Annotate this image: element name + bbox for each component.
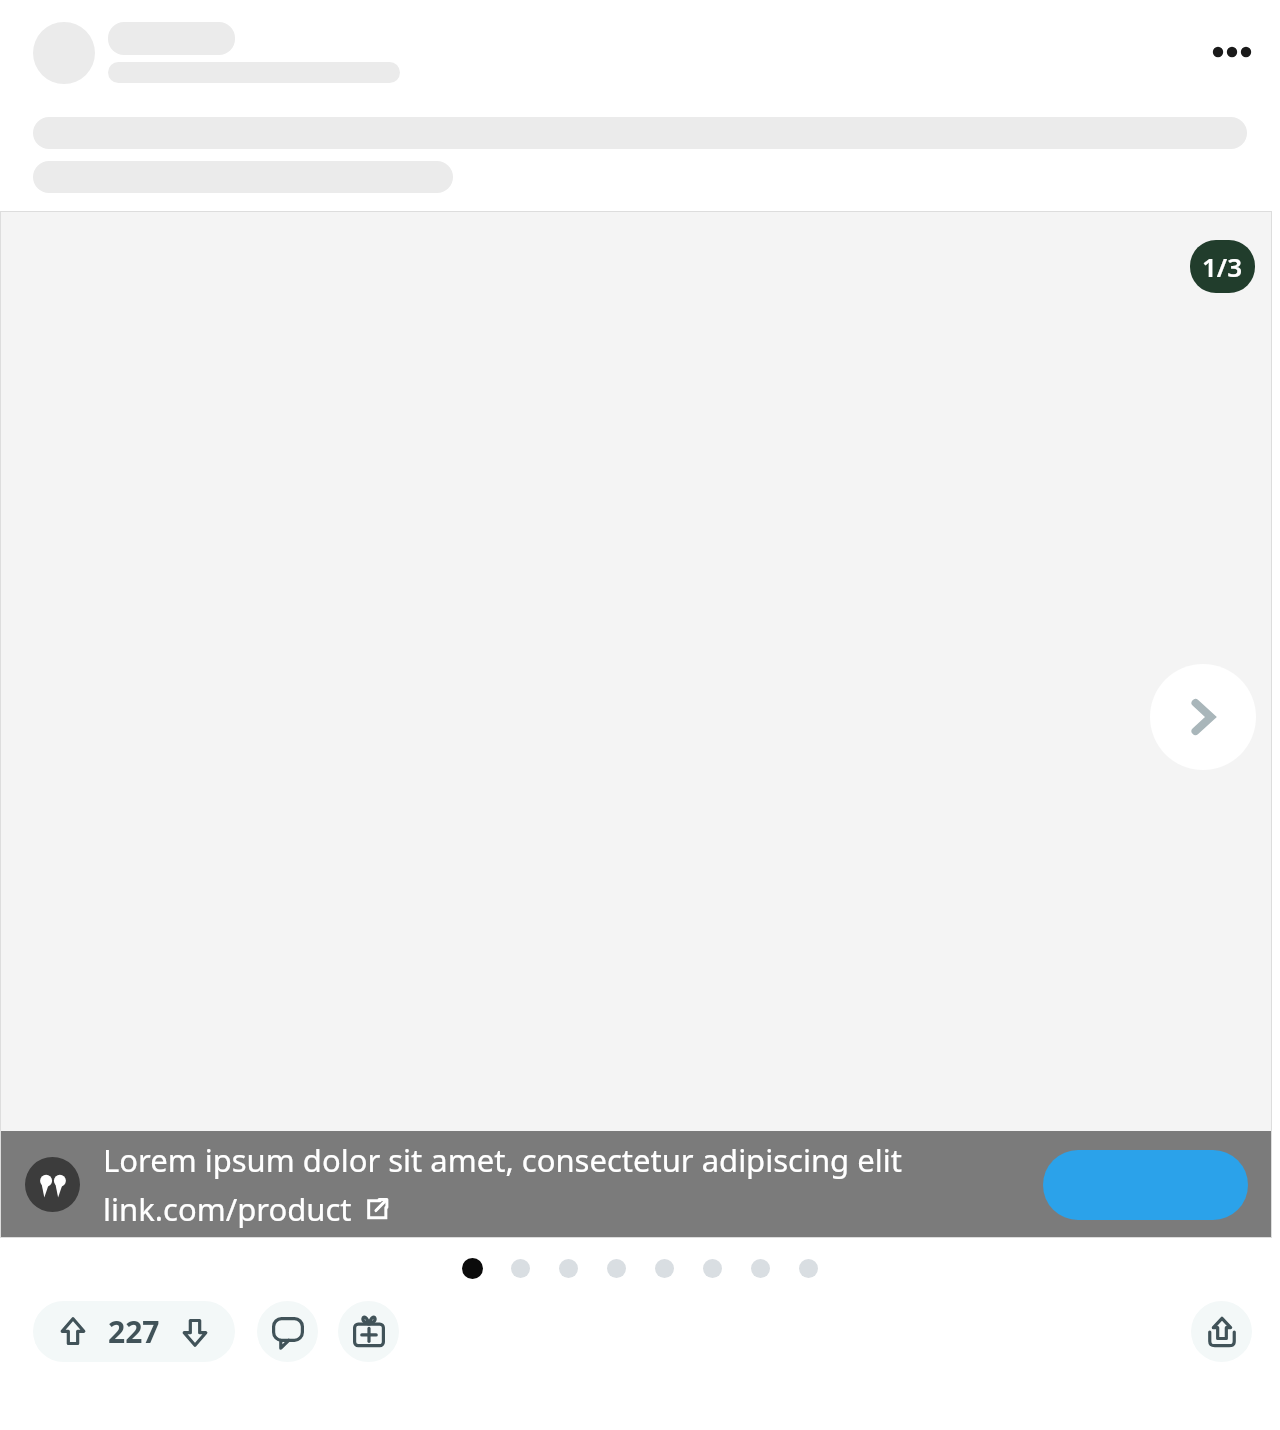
button[interactable]: Comments [257,1301,318,1362]
staticText: 227 [108,1311,160,1352]
button[interactable]: Upvote [33,1301,235,1362]
button[interactable]: Upvote [53,1312,93,1352]
staticText: 1/3 [1202,249,1243,284]
staticText: Lorem ipsum dolor sit amet, consectetur … [103,1139,902,1181]
button[interactable]: Next image [1150,664,1256,770]
button[interactable]: Award [338,1301,399,1362]
button[interactable]: Author avatar [33,22,95,84]
button[interactable]: Lorem ipsum dolor sit amet, consectetur … [0,1131,1272,1238]
button[interactable]: Open link [1043,1150,1248,1220]
button[interactable]: Downvote [175,1312,215,1352]
button[interactable]: 1/3 [1190,240,1255,293]
staticText: link.com/product [103,1188,352,1230]
button[interactable]: More options [1202,22,1262,82]
button[interactable]: Share [1191,1301,1252,1362]
